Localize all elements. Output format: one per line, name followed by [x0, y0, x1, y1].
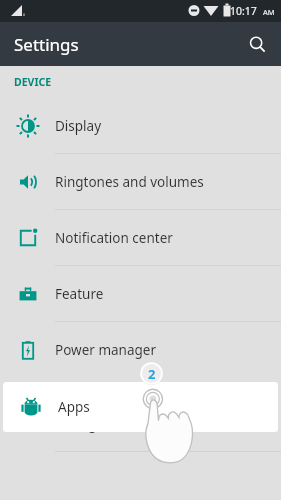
staticText: AM	[263, 7, 275, 17]
button[interactable]: Ringtones and volumes	[0, 154, 281, 210]
staticText: Power manager	[55, 341, 156, 359]
button[interactable]: Search	[239, 26, 275, 62]
staticText: Feature	[55, 285, 104, 303]
button[interactable]: Apps	[3, 382, 278, 432]
staticText: Display	[55, 117, 102, 135]
staticText: Notification center	[55, 229, 173, 247]
staticText: 10:17	[230, 4, 257, 18]
button[interactable]: Display	[0, 98, 281, 154]
staticText: Settings	[14, 33, 79, 56]
button[interactable]: Storage & USB	[0, 396, 281, 452]
button[interactable]: Notification center	[0, 210, 281, 266]
staticText: 2	[148, 365, 156, 383]
staticText: Ringtones and volumes	[55, 173, 204, 191]
staticText: Storage & USB	[55, 415, 148, 433]
staticText: Apps	[58, 398, 90, 416]
button[interactable]: Power manager	[0, 322, 281, 378]
staticText: DEVICE	[14, 75, 52, 89]
button[interactable]: Feature	[0, 266, 281, 322]
